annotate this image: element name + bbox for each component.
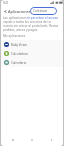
staticText: Calendario <box>11 61 27 65</box>
staticText: Mis aplicaciones <box>3 34 26 38</box>
staticText: 9:41 <box>3 1 9 5</box>
staticText: Aplicaciones <box>8 9 31 14</box>
button[interactable]: Back <box>6 136 20 143</box>
button[interactable]: Recent apps <box>44 136 58 143</box>
button[interactable]: Back <box>2 8 8 14</box>
staticText: Continuar <box>33 9 48 13</box>
staticText: Baby Vision <box>11 43 28 47</box>
button[interactable]: Home <box>25 136 39 143</box>
button[interactable]: Calculadora <box>1 49 63 58</box>
staticText: Calculadora <box>11 52 28 56</box>
button[interactable]: Calendario <box>1 58 63 67</box>
button[interactable]: Baby Vision <box>1 40 63 49</box>
staticText: Las aplicaciones te permiten el acceso r… <box>3 16 59 32</box>
button[interactable]: Continuar <box>30 7 57 15</box>
